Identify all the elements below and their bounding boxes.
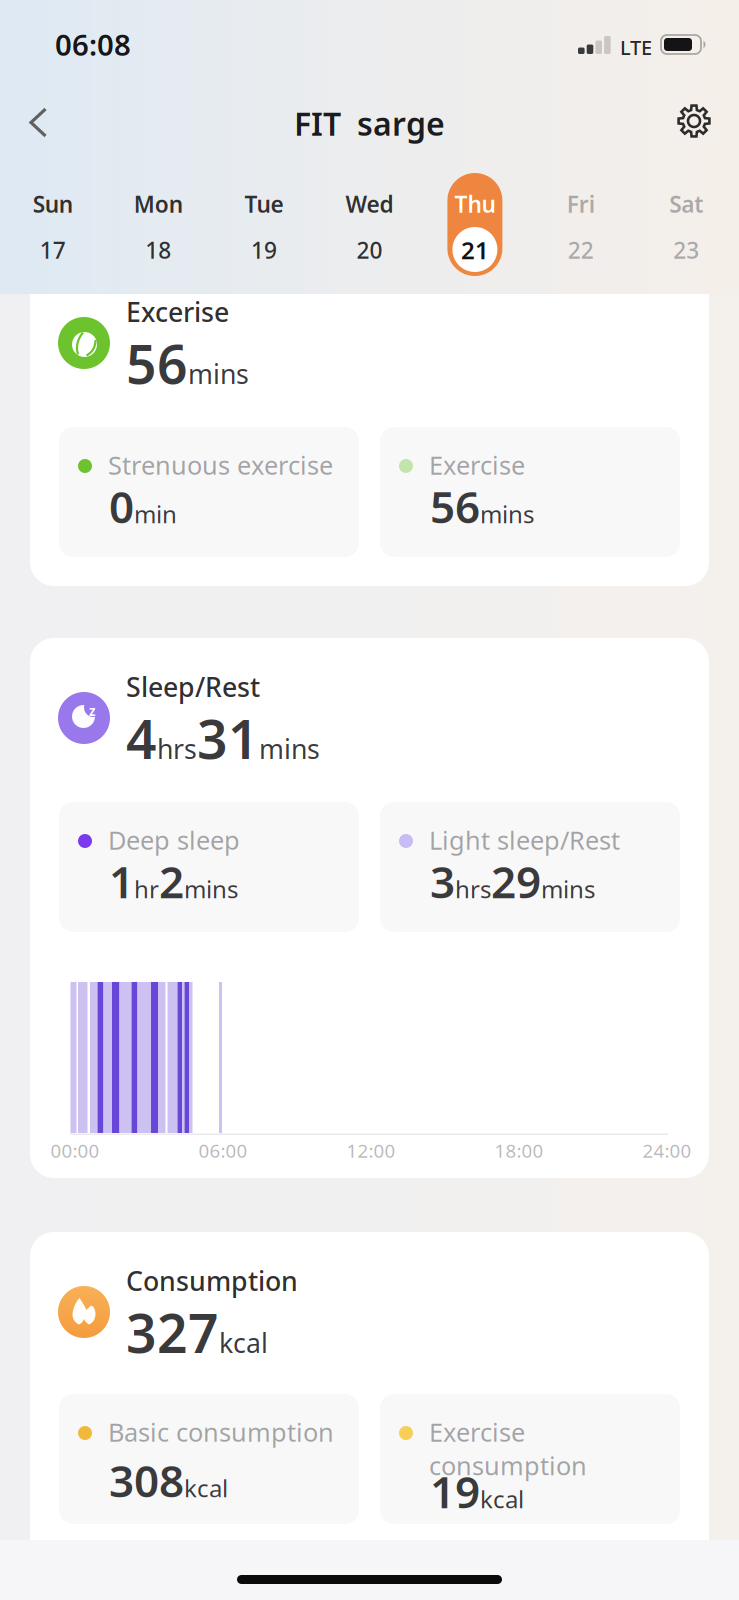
staticText: mins: [541, 873, 595, 905]
staticText: Exercise: [429, 448, 525, 482]
staticText: hrs: [157, 731, 197, 766]
staticText: kcal: [219, 1325, 268, 1360]
staticText: 00:00: [50, 1138, 99, 1163]
staticText: 56: [430, 477, 480, 535]
staticText: 308: [109, 1451, 184, 1509]
staticText: Fri: [567, 189, 595, 219]
staticText: 24:00: [642, 1138, 691, 1163]
staticText: Sleep/Rest: [126, 669, 260, 704]
button[interactable]: Sun: [0, 189, 106, 269]
staticText: 21: [461, 234, 489, 266]
staticText: 18:00: [494, 1138, 543, 1163]
staticText: LTE: [620, 34, 652, 61]
staticText: mins: [184, 873, 238, 905]
staticText: Wed: [345, 189, 393, 219]
button[interactable]: Settings: [677, 104, 711, 138]
button[interactable]: Sat: [633, 189, 739, 269]
staticText: 29: [491, 852, 541, 910]
staticText: Exercise consumption: [429, 1415, 587, 1482]
staticText: Deep sleep: [108, 823, 240, 857]
staticText: 12:00: [346, 1138, 395, 1163]
staticText: hr: [134, 873, 159, 905]
staticText: Strenuous exercise: [108, 448, 333, 482]
staticText: 1: [109, 852, 134, 910]
staticText: 17: [40, 235, 66, 265]
staticText: 06:08: [55, 25, 131, 64]
staticText: 19: [251, 235, 277, 265]
staticText: 2: [159, 852, 184, 910]
staticText: Tue: [244, 189, 283, 219]
staticText: 20: [356, 235, 382, 265]
staticText: Excerise: [126, 294, 229, 329]
staticText: Sun: [33, 189, 73, 219]
staticText: z: [89, 702, 96, 720]
button[interactable]: Thu: [422, 189, 528, 269]
staticText: 23: [673, 235, 699, 265]
staticText: hrs: [455, 873, 491, 905]
staticText: 19: [430, 1462, 480, 1520]
button[interactable]: Wed: [317, 189, 422, 269]
staticText: mins: [188, 356, 249, 391]
staticText: Sat: [669, 189, 703, 219]
staticText: Light sleep/Rest: [429, 823, 620, 857]
staticText: 0: [109, 477, 134, 535]
staticText: Thu: [455, 189, 496, 219]
staticText: mins: [259, 731, 320, 766]
button[interactable]: Fri: [528, 189, 633, 269]
staticText: 4: [126, 703, 157, 774]
staticText: 3: [430, 852, 455, 910]
staticText: kcal: [480, 1483, 524, 1515]
staticText: 22: [568, 235, 594, 265]
button[interactable]: Mon: [106, 189, 211, 269]
staticText: Consumption: [126, 1263, 298, 1298]
button[interactable]: Thursday 21: [447, 173, 502, 276]
staticText: FIT sarge: [294, 102, 445, 144]
staticText: 06:00: [198, 1138, 247, 1163]
staticText: Mon: [134, 189, 183, 219]
staticText: min: [134, 498, 177, 530]
button[interactable]: Tue: [211, 189, 317, 269]
button[interactable]: Back: [28, 107, 49, 138]
staticText: kcal: [184, 1472, 228, 1504]
staticText: 18: [145, 235, 171, 265]
staticText: 56: [126, 328, 188, 399]
staticText: Basic consumption: [108, 1415, 334, 1449]
staticText: 31: [197, 703, 259, 774]
staticText: mins: [480, 498, 534, 530]
staticText: 327: [126, 1297, 219, 1368]
